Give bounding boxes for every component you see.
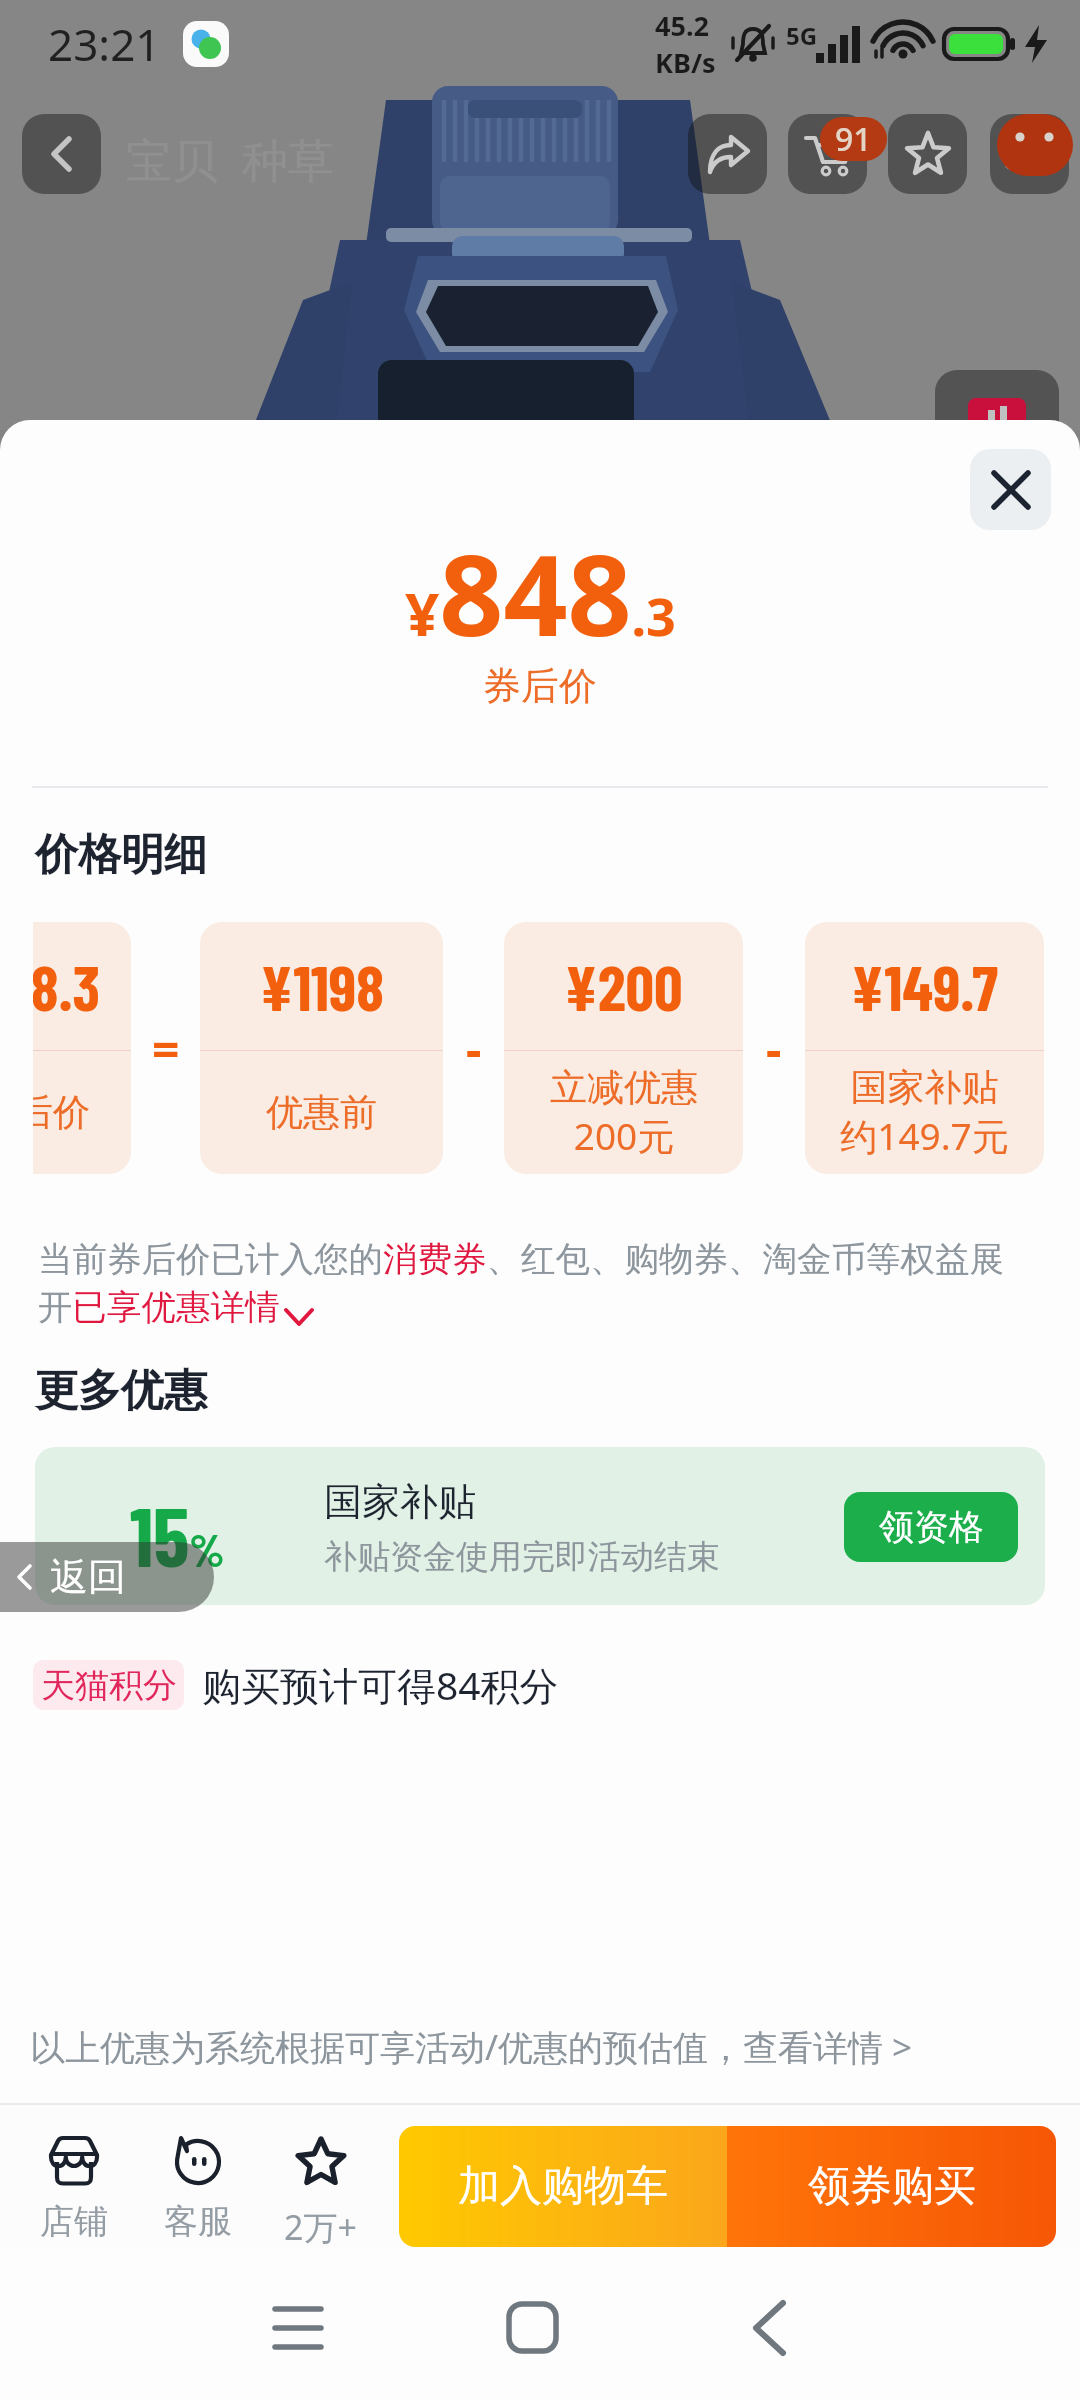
staticText: 天猫积分 [41,1664,177,1707]
button[interactable]: Rank [935,370,1059,430]
staticText: KB/s [655,44,716,81]
button[interactable]: 15% [35,1447,1045,1605]
staticText: 补贴资金使用完即活动结束 [324,1536,720,1578]
button[interactable]: 加入购物车 [399,2126,727,2247]
button[interactable]: Home [472,2250,592,2400]
button[interactable]: 当前券后价已计入您的消费券、红包、购物券、淘金币等权益展开已享优惠详情 [38,1238,1030,1329]
button[interactable]: More [990,114,1069,194]
staticText: 23:21 [48,14,161,74]
staticText: 购买预计可得84积分 [202,1658,559,1711]
button[interactable]: ¥1198 [200,922,443,1174]
button[interactable]: 领资格 [844,1492,1018,1562]
button[interactable]: Share [688,114,767,194]
staticText: 客服 [164,2200,232,2243]
staticText: 价格明细 [35,828,207,882]
staticText: ¥200 [564,948,683,1024]
staticText: 5G [786,19,818,52]
button[interactable]: Cart [788,114,867,194]
staticText: 返回 [50,1553,126,1601]
staticText: 更多优惠 [35,1364,207,1418]
button[interactable]: ¥149.7 [805,922,1044,1174]
staticText: 国家补贴 [324,1478,476,1526]
staticText: 加入购物车 [458,2160,668,2213]
staticText: ¥149.7 [851,948,998,1024]
staticText: 券后价 [483,662,597,710]
staticText: 848.3 [33,948,100,1024]
staticText: = [152,1016,180,1081]
button[interactable]: Back [707,2250,827,2400]
button[interactable]: 848.3 [33,922,131,1174]
staticText: 领资格 [879,1505,984,1549]
button[interactable]: Recent apps [237,2250,357,2400]
staticText: 立减优惠 200元 [550,1064,698,1161]
staticText: ¥1198 [260,948,384,1024]
staticText: 2万+ [284,2204,357,2250]
button[interactable]: 店铺 [17,2133,130,2243]
button[interactable]: 以上优惠为系统根据可享活动/优惠的预估值，查看详情 > [30,2023,913,2071]
button[interactable]: 领券购买 [727,2126,1056,2247]
button[interactable]: 客服 [141,2133,254,2243]
staticText: 领券购买 [808,2160,976,2213]
staticText: 15% [130,1485,225,1583]
staticText: - [466,1016,482,1081]
staticText: 宝贝 种草 [126,128,334,191]
staticText: - [766,1016,782,1081]
staticText: 91 [835,117,872,161]
staticText: 优惠前 [266,1089,377,1136]
button[interactable]: Back [0,1542,214,1612]
button[interactable]: Favorite [888,114,967,194]
staticText: 国家补贴 约149.7元 [840,1064,1009,1161]
staticText: 券后价 [33,1089,90,1136]
staticText: 店铺 [40,2200,108,2243]
staticText: 45.2 [655,7,709,44]
button[interactable]: Close [970,449,1051,530]
button[interactable]: Back [22,114,101,194]
button[interactable]: 2万+ [264,2133,377,2250]
staticText: ¥848.3 [405,516,676,669]
button[interactable]: ¥200 [504,922,743,1174]
